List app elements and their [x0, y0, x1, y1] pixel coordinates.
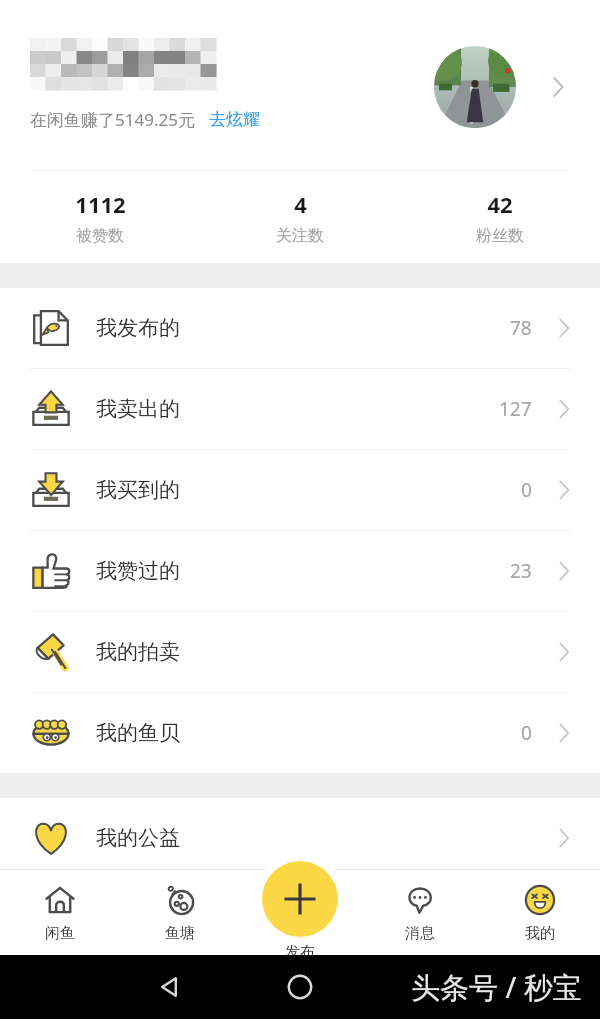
button[interactable]: 我的拍卖	[0, 612, 600, 692]
button[interactable]: 我赞过的	[0, 531, 600, 611]
button[interactable]: 我的鱼贝	[0, 693, 600, 773]
button[interactable]: 我的	[480, 870, 600, 955]
staticText: 23	[510, 558, 532, 584]
staticText: 127	[499, 396, 532, 422]
staticText: 我的鱼贝	[96, 720, 180, 746]
staticText: 我卖出的	[96, 396, 180, 422]
staticText: 我买到的	[96, 477, 180, 503]
button[interactable]: 42	[400, 171, 600, 263]
button[interactable]: 闲鱼	[0, 870, 120, 955]
staticText: 被赞数	[76, 226, 124, 246]
button[interactable]: 1112	[0, 171, 200, 263]
staticText: 42	[487, 189, 513, 219]
button[interactable]: 鱼塘	[120, 870, 240, 955]
button[interactable]: 去炫耀	[209, 109, 260, 130]
staticText: 我的	[525, 924, 555, 943]
button[interactable]: 我买到的	[0, 450, 600, 530]
button[interactable]: 我的公益	[0, 798, 600, 878]
staticText: 关注数	[276, 226, 324, 246]
button[interactable]: 头像	[434, 46, 516, 128]
staticText: 我的拍卖	[96, 639, 180, 665]
staticText: 头条号 / 秒宝	[411, 967, 582, 1007]
button[interactable]: 消息	[360, 870, 480, 955]
staticText: 去炫耀	[209, 109, 260, 130]
staticText: 我发布的	[96, 315, 180, 341]
staticText: 1112	[75, 189, 126, 219]
button[interactable]: 我卖出的	[0, 369, 600, 449]
button[interactable]: 发布	[262, 861, 338, 937]
staticText: 我的公益	[96, 825, 180, 851]
staticText: 0	[521, 477, 532, 503]
button[interactable]: 我发布的	[0, 288, 600, 368]
button[interactable]: 个人资料	[538, 68, 576, 106]
staticText: 闲鱼	[45, 924, 75, 943]
staticText: 78	[510, 315, 532, 341]
staticText: 0	[521, 720, 532, 746]
other: 主页	[283, 970, 317, 1004]
staticText: 粉丝数	[476, 226, 524, 246]
button[interactable]: 4	[200, 171, 400, 263]
staticText: 消息	[405, 924, 435, 943]
staticText: 我赞过的	[96, 558, 180, 584]
other: 返回	[152, 970, 186, 1004]
button[interactable]: 在闲鱼赚了5149.25元	[0, 0, 600, 170]
staticText: 在闲鱼赚了5149.25元	[30, 108, 195, 131]
staticText: 4	[294, 189, 307, 219]
staticText: 发布	[285, 943, 315, 961]
staticText: 鱼塘	[165, 924, 195, 943]
